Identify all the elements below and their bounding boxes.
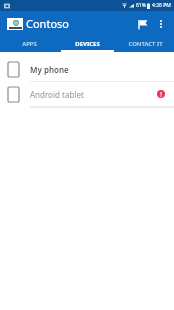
button[interactable]: DEVICES [58, 36, 116, 52]
staticText: APPS [22, 40, 37, 48]
staticText: 4:26 PM [152, 2, 171, 9]
staticText: My phone [30, 64, 69, 75]
button[interactable]: Flag [132, 14, 152, 34]
staticText: 61% [136, 2, 146, 9]
button[interactable]: CONTACT IT [116, 36, 174, 52]
staticText: DEVICES [75, 40, 100, 48]
staticText: CONTACT IT [128, 40, 163, 48]
button[interactable]: My phone [0, 57, 174, 81]
button[interactable]: More options [152, 15, 170, 33]
button[interactable]: Android tablet [0, 82, 174, 106]
staticText: Contoso [26, 16, 69, 31]
staticText: Android tablet [30, 89, 84, 100]
button[interactable]: APPS [0, 36, 58, 52]
